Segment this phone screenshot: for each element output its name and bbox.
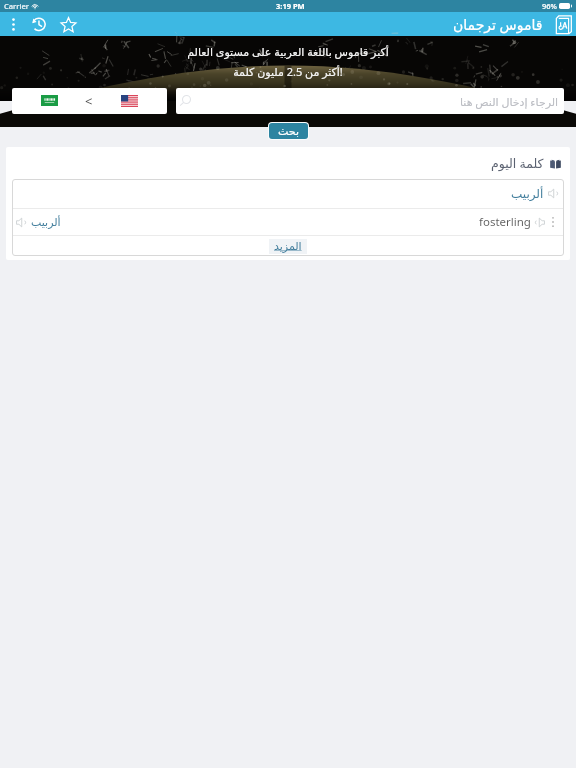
button[interactable]: Swap languages [12, 88, 167, 114]
staticText: Carrier [4, 1, 29, 11]
staticText: بحث [278, 125, 299, 138]
button[interactable]: Options [548, 212, 558, 232]
button[interactable]: بحث [269, 123, 308, 139]
staticText: ألربيب [511, 187, 544, 201]
button[interactable]: History [26, 12, 50, 36]
staticText: 96% [542, 1, 557, 11]
staticText: fosterling [479, 214, 531, 230]
staticText: أكبر قاموس باللغة العربية على مستوى العا… [187, 44, 389, 59]
staticText: كلمة اليوم [491, 155, 544, 172]
button[interactable]: More options [0, 12, 26, 36]
button[interactable]: الرجاء إدخال النص هنا [176, 88, 564, 114]
staticText: ألربيب [31, 216, 61, 229]
button[interactable]: Favorites [57, 12, 79, 36]
button[interactable]: المزيد [269, 239, 307, 254]
staticText: الرجاء إدخال النص هنا [460, 94, 559, 109]
staticText: المزيد [274, 240, 302, 253]
button[interactable]: ألربيب [12, 179, 564, 208]
staticText: 3:19 PM [276, 1, 305, 11]
button[interactable]: Dictionary [550, 12, 576, 36]
staticText: أكثر من 2.5 مليون كلمة! [233, 64, 343, 79]
staticText: قاموس ترجمان [453, 15, 543, 34]
staticText: < [85, 92, 93, 110]
button[interactable]: ألربيب [12, 209, 564, 235]
